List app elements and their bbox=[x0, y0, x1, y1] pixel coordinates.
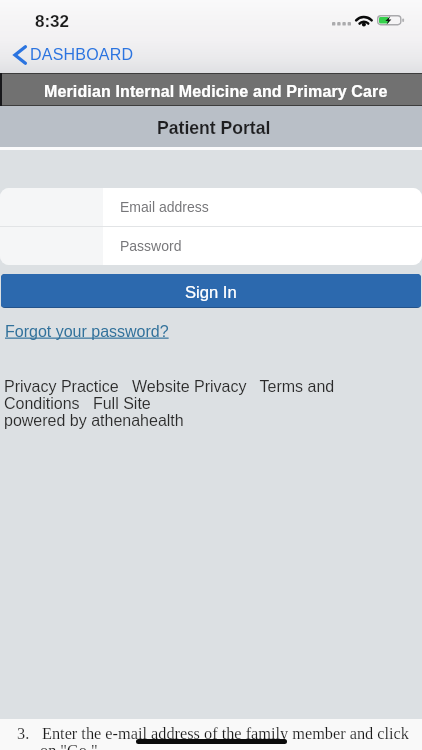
staticText: 3. bbox=[17, 724, 30, 742]
staticText: Privacy Practice Website Privacy Terms a… bbox=[4, 378, 335, 396]
staticText: Meridian Internal Medicine and Primary C… bbox=[44, 83, 388, 101]
button[interactable]: Forgot your password? bbox=[4, 323, 170, 341]
staticText: on "Go." bbox=[40, 741, 98, 750]
button[interactable]: Sign In bbox=[1, 274, 421, 307]
button[interactable]: Password bbox=[0, 227, 422, 265]
staticText: Password bbox=[120, 238, 182, 254]
staticText: Email address bbox=[120, 199, 209, 215]
staticText: Patient Portal bbox=[157, 118, 271, 138]
staticText: 8:32 bbox=[35, 12, 70, 31]
button[interactable]: Email address bbox=[0, 188, 422, 226]
staticText: powered by athenahealth bbox=[4, 412, 184, 430]
staticText: Sign In bbox=[185, 283, 237, 302]
staticText: Forgot your password? bbox=[5, 323, 169, 341]
staticText: DASHBOARD bbox=[30, 46, 134, 64]
button[interactable]: Back to Dashboard bbox=[0, 44, 144, 69]
staticText: Enter the e-mail address of the family m… bbox=[42, 724, 409, 742]
staticText: Conditions Full Site bbox=[4, 395, 151, 413]
